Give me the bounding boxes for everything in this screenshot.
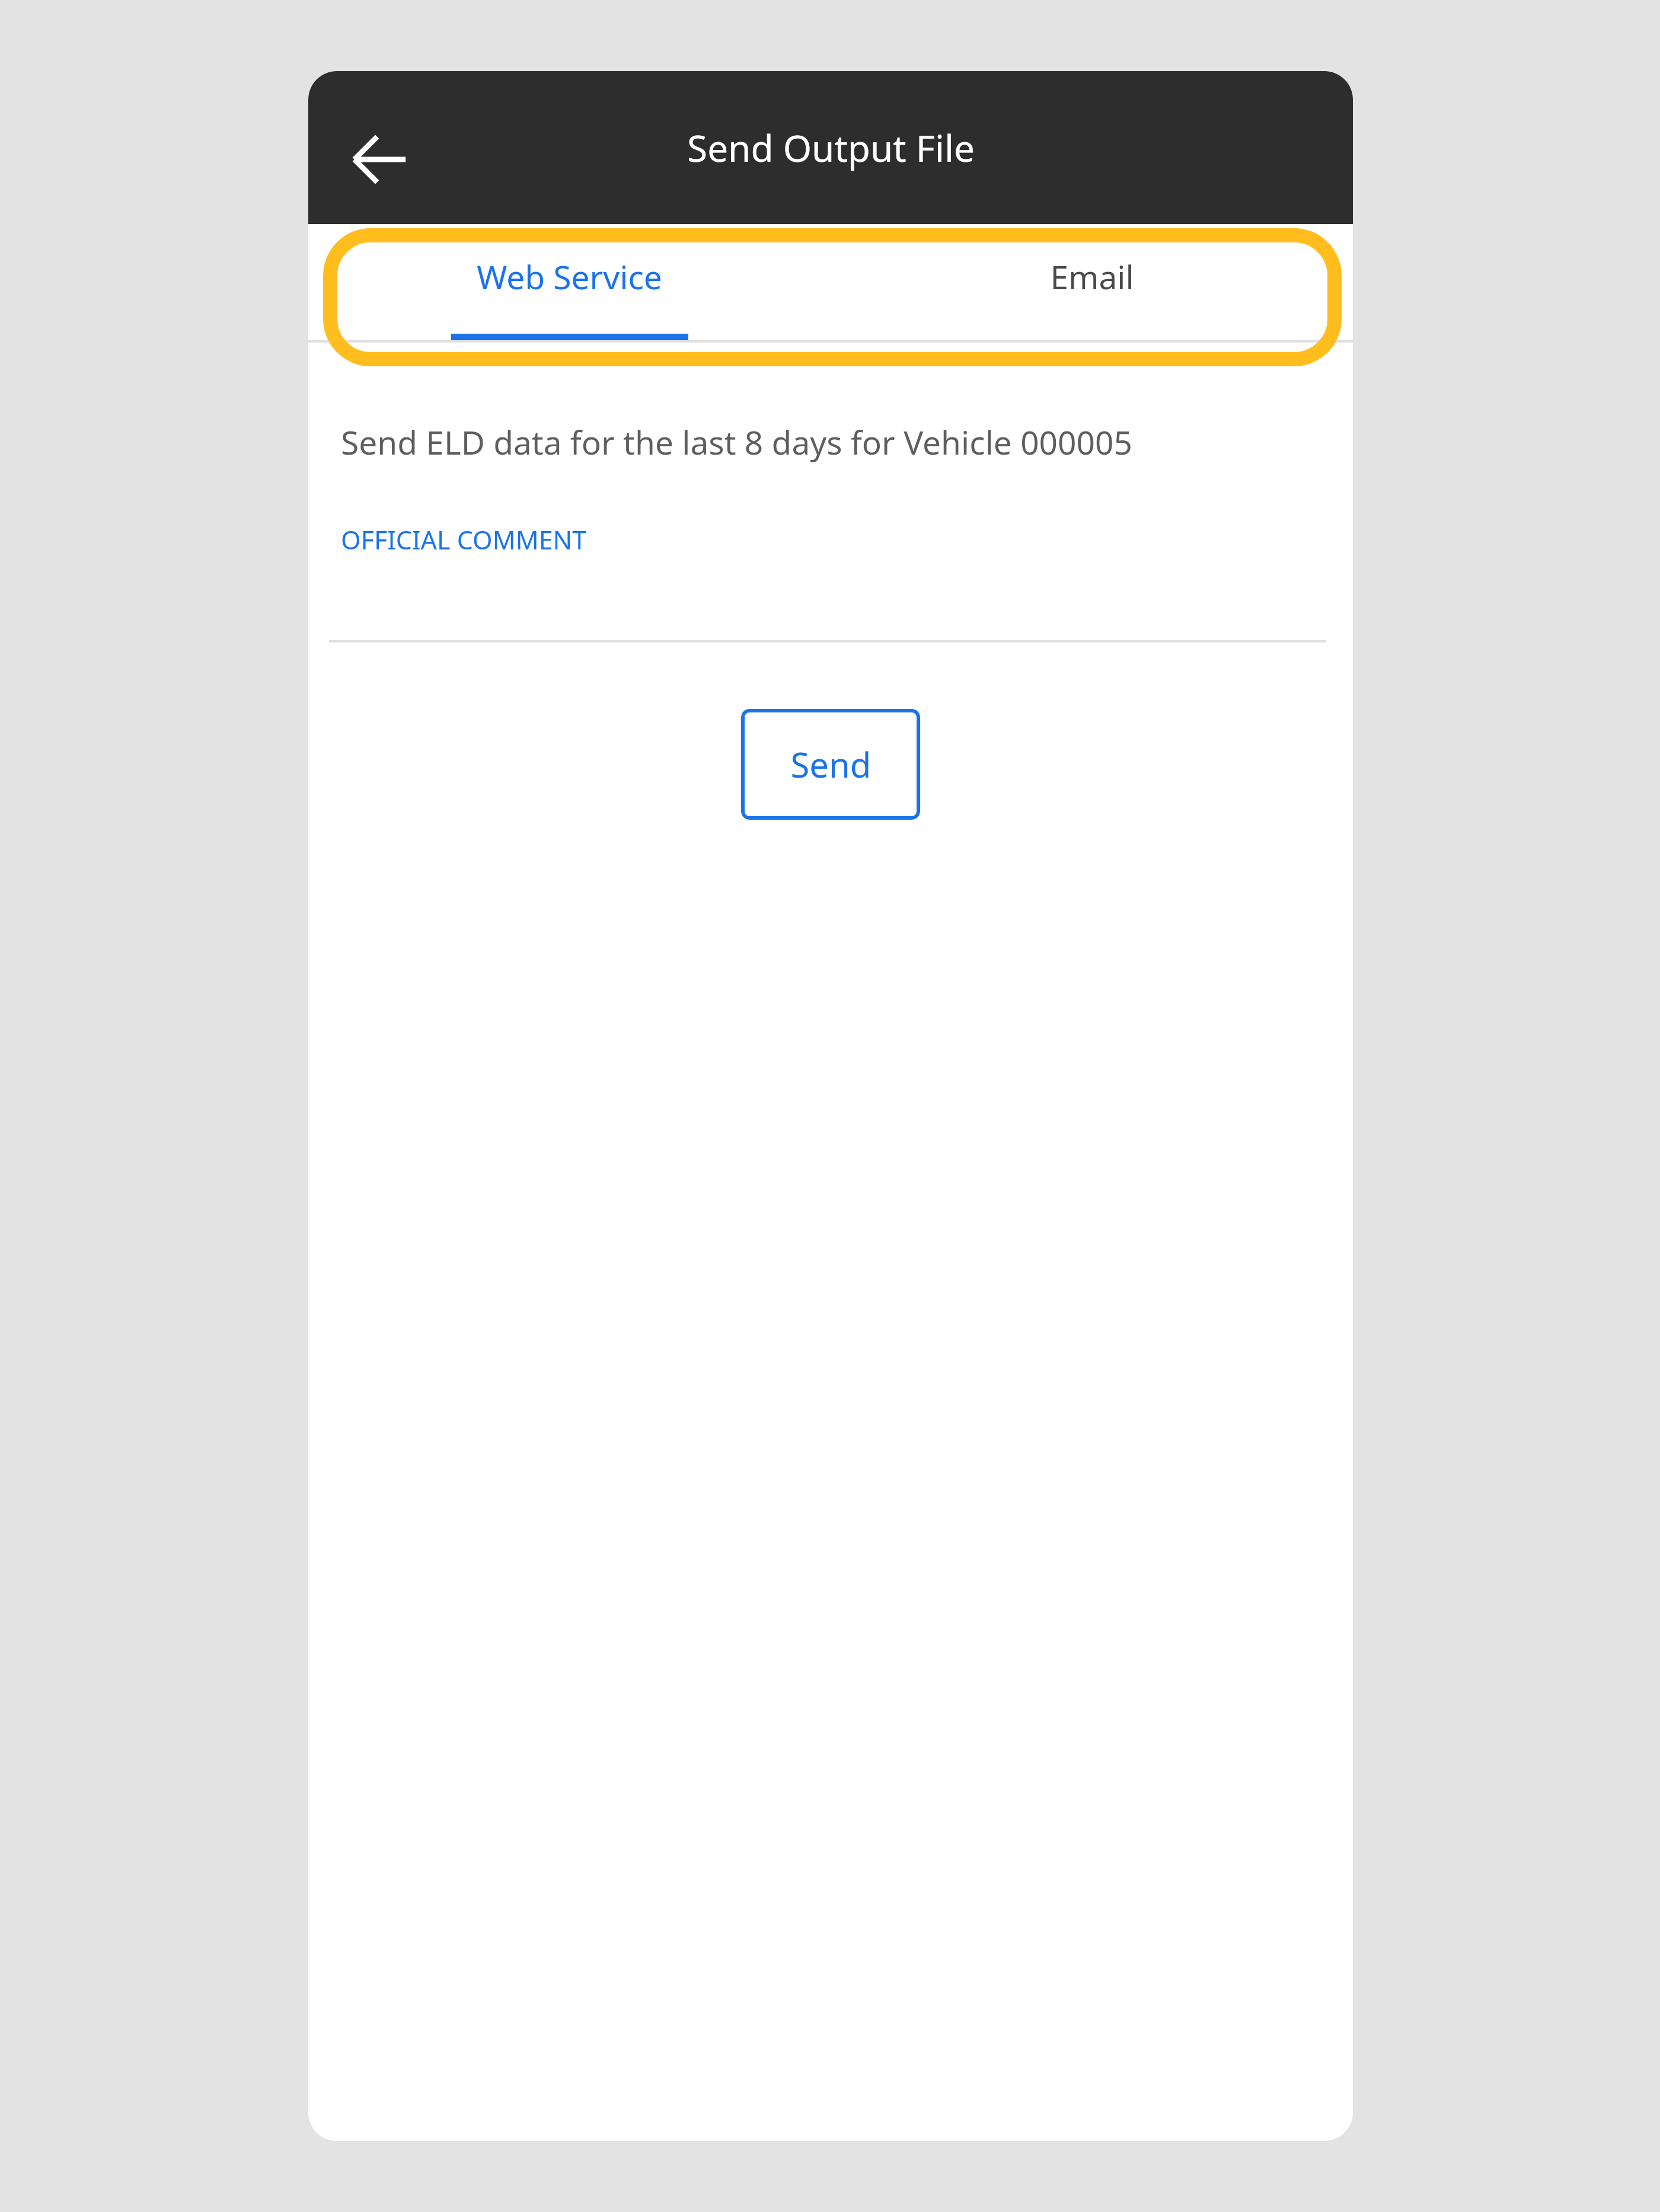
button[interactable]: Email [831,224,1353,343]
button[interactable]: Send [741,709,920,820]
button[interactable]: Web Service [308,224,831,343]
staticText: Email [1050,254,1134,299]
staticText: Send Output File [687,123,975,172]
staticText: Send ELD data for the last 8 days for Ve… [341,420,1132,464]
staticText: Send [790,741,871,788]
button[interactable]: Back [331,111,428,208]
staticText: OFFICIAL COMMENT [341,522,587,557]
button[interactable]: OFFICIAL COMMENT [341,522,587,557]
staticText: Web Service [477,254,662,299]
